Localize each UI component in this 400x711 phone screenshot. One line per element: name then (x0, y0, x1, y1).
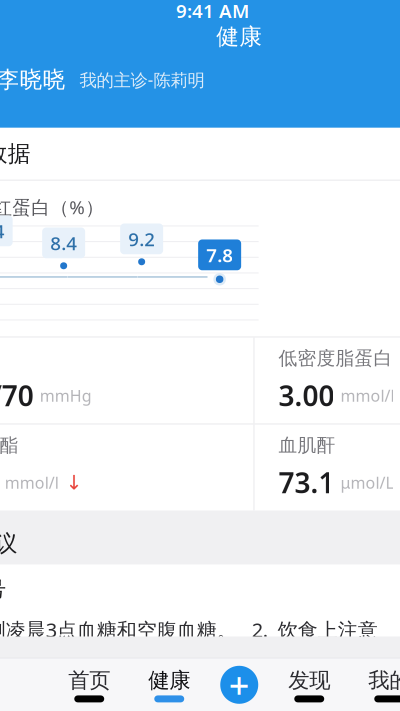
staticText: 健康 (148, 667, 190, 693)
button[interactable]: 照护建议 (0, 522, 400, 564)
staticText: 发现 (288, 667, 330, 693)
staticText: mmol/l (340, 385, 394, 406)
staticText: μmol/L (340, 472, 393, 493)
button[interactable]: 健康 (129, 658, 209, 711)
staticText: 8.4 (50, 230, 77, 255)
staticText: 7月2号 (0, 574, 6, 602)
button[interactable]: 我的 (349, 658, 400, 711)
staticText: 9:41 AM (176, 0, 249, 23)
staticText: 血肌酐 (278, 434, 335, 457)
staticText: 低密度脂蛋白 (278, 347, 392, 370)
button[interactable]: 首页 (49, 658, 129, 711)
staticText: 甘油三酯 (0, 434, 19, 457)
button[interactable]: 添加 (209, 658, 269, 711)
staticText: 1. 检测凌晨3点血糖和空腹血糖。 2. 饮食上注意 (0, 616, 378, 643)
button[interactable]: 化验数据 (0, 128, 400, 180)
staticText: 我的主诊-陈莉明 (79, 68, 204, 91)
staticText: 糖化血红蛋白（%） (0, 195, 104, 219)
button[interactable]: 发现 (269, 658, 349, 711)
staticText: 李晓晓 (0, 66, 65, 94)
staticText: ↓ (66, 471, 83, 494)
staticText: mmol/l (5, 472, 59, 493)
staticText: 9.2 (128, 226, 155, 251)
staticText: mmHg (40, 385, 92, 406)
staticText: + (229, 661, 250, 709)
staticText: 我的 (368, 667, 400, 693)
staticText: 健康 (216, 23, 262, 51)
staticText: 120/70 (0, 377, 34, 414)
staticText: 照护建议 (0, 530, 18, 557)
staticText: 10.4 (0, 218, 5, 243)
staticText: 3.00 (278, 377, 334, 414)
staticText: 73.1 (278, 464, 334, 501)
staticText: 化验数据 (0, 140, 31, 168)
staticText: 7.8 (206, 242, 233, 267)
staticText: 首页 (68, 667, 110, 693)
